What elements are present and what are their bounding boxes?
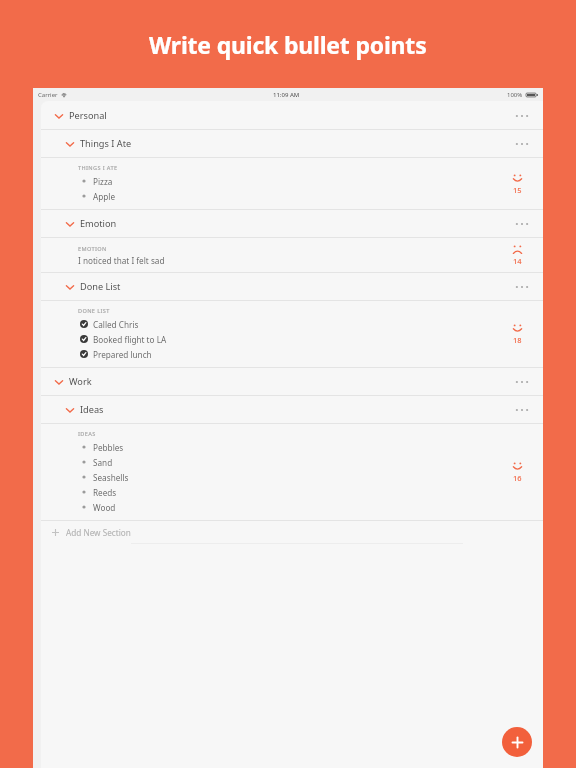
staticText: Carrier <box>38 91 58 99</box>
other: More options <box>514 141 530 147</box>
button[interactable]: Work <box>41 368 543 395</box>
staticText: Things I Ate <box>80 137 132 150</box>
staticText: I noticed that I felt sad <box>78 255 165 266</box>
button[interactable]: Add new entry <box>502 727 532 757</box>
other: More options <box>514 379 530 385</box>
staticText: Pizza <box>93 176 113 187</box>
button[interactable]: IDEAS <box>41 424 543 520</box>
staticText: Work <box>69 375 92 388</box>
staticText: THINGS I ATE <box>78 164 118 172</box>
staticText: 18 <box>513 335 522 345</box>
button[interactable]: Emotion <box>41 210 543 237</box>
button[interactable]: Things I Ate <box>41 130 543 157</box>
button[interactable]: Add New Section <box>41 521 543 543</box>
staticText: 100% <box>507 91 523 99</box>
staticText: Wood <box>93 502 116 513</box>
staticText: Pebbles <box>93 442 124 453</box>
staticText: 14 <box>513 256 522 266</box>
other: More options <box>514 221 530 227</box>
staticText: Done List <box>80 280 121 293</box>
button[interactable]: Ideas <box>41 396 543 423</box>
staticText: Booked flight to LA <box>93 334 167 345</box>
staticText: Sand <box>93 457 113 468</box>
button[interactable]: Sad mood 14 <box>504 244 530 266</box>
button[interactable]: Happy mood 15 <box>504 173 530 195</box>
other: More options <box>514 407 530 413</box>
button[interactable]: THINGS I ATE <box>41 158 543 209</box>
button[interactable]: Done List <box>41 273 543 300</box>
staticText: 15 <box>513 185 522 195</box>
button[interactable]: Personal <box>41 102 543 129</box>
staticText: Prepared lunch <box>93 349 152 360</box>
staticText: Add New Section <box>66 527 131 538</box>
staticText: Called Chris <box>93 319 139 330</box>
staticText: Reeds <box>93 487 117 498</box>
staticText: Personal <box>69 109 107 122</box>
button[interactable]: EMOTION <box>41 238 543 272</box>
staticText: IDEAS <box>78 430 96 438</box>
button[interactable]: DONE LIST <box>41 301 543 367</box>
staticText: Apple <box>93 191 116 202</box>
staticText: Write quick bullet points <box>149 29 427 60</box>
staticText: Emotion <box>80 217 117 230</box>
staticText: Ideas <box>80 403 104 416</box>
staticText: Seashells <box>93 472 129 483</box>
button[interactable]: Happy mood 16 <box>504 461 530 483</box>
staticText: 11:09 AM <box>273 91 300 99</box>
other: More options <box>514 113 530 119</box>
other: More options <box>514 284 530 290</box>
staticText: EMOTION <box>78 245 107 253</box>
staticText: 16 <box>513 473 522 483</box>
staticText: DONE LIST <box>78 307 110 315</box>
button[interactable]: Happy mood 18 <box>504 323 530 345</box>
